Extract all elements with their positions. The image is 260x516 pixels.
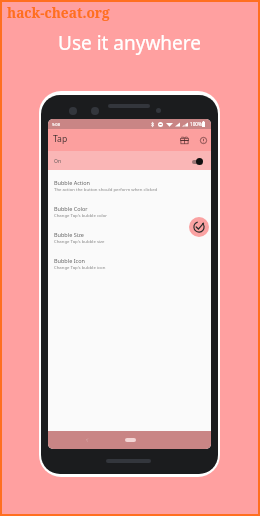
- button[interactable]: Gift: [176, 132, 192, 148]
- button[interactable]: Home: [125, 438, 136, 442]
- staticText: Bubble Size: [54, 231, 84, 238]
- button[interactable]: Confirm: [189, 217, 209, 237]
- staticText: Change Tap's bubble color: [54, 212, 108, 218]
- staticText: Bubble Color: [54, 205, 88, 212]
- button[interactable]: Bubble Icon: [48, 252, 211, 278]
- staticText: Change Tap's bubble size: [54, 238, 105, 244]
- button[interactable]: On: [48, 151, 211, 170]
- staticText: 9:08: [52, 122, 60, 127]
- staticText: Bubble Icon: [54, 257, 85, 264]
- staticText: Use it anywhere: [58, 30, 202, 56]
- button[interactable]: Back: [83, 436, 91, 444]
- staticText: Tap: [53, 133, 68, 145]
- button[interactable]: Info: [195, 132, 211, 148]
- staticText: On: [54, 158, 61, 165]
- staticText: The action the button should perform whe…: [54, 186, 158, 192]
- staticText: hack-cheat.org: [7, 3, 110, 22]
- button[interactable]: Bubble Color: [48, 200, 211, 226]
- staticText: Change Tap's bubble icon: [54, 264, 106, 270]
- button[interactable]: Bubble Size: [48, 226, 211, 252]
- button[interactable]: Bubble Action: [48, 174, 211, 200]
- staticText: Bubble Action: [54, 179, 90, 186]
- staticText: 100%: [190, 121, 202, 127]
